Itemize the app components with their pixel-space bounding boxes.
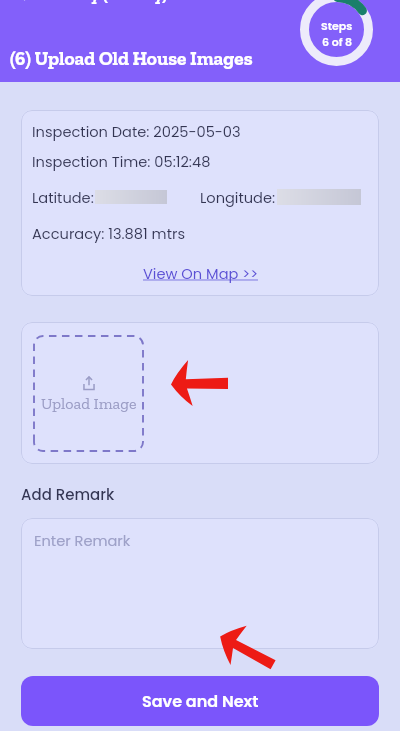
staticText: (6) Upload Old House Images — [10, 47, 253, 70]
staticText: Longitude: — [200, 188, 276, 208]
staticText: Survey (Survey) — [44, 0, 168, 5]
staticText: Upload Image — [41, 394, 137, 413]
staticText: 6 of 8 — [322, 34, 353, 49]
staticText: Enter Remark — [34, 531, 131, 551]
staticText: Latitude: — [32, 188, 94, 208]
staticText: Steps — [321, 18, 353, 33]
button[interactable]: View On Map >> — [143, 264, 258, 284]
staticText: Add Remark — [21, 484, 115, 505]
staticText: Inspection Time: 05:12:48 — [32, 152, 211, 172]
button[interactable]: Upload Image — [33, 335, 144, 452]
staticText: Accuracy: 13.881 mtrs — [32, 224, 186, 244]
staticText: Save and Next — [142, 690, 259, 712]
button[interactable]: Back — [14, 0, 30, 2]
staticText: Inspection Date: 2025-05-03 — [32, 122, 241, 142]
button[interactable]: Save and Next — [21, 676, 379, 726]
button[interactable]: Enter Remark — [21, 518, 379, 649]
